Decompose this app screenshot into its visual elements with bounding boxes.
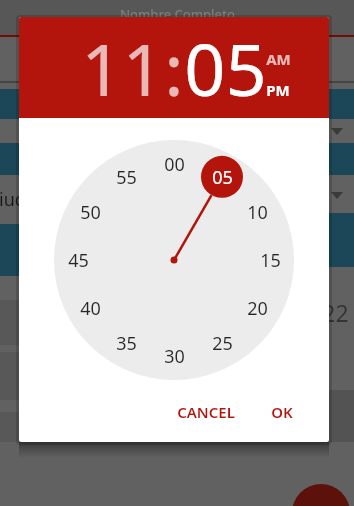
- staticText: Nombre Completo: [120, 5, 235, 23]
- button[interactable]: 00: [154, 152, 194, 176]
- staticText: 15: [260, 248, 281, 272]
- button[interactable]: 15: [250, 248, 290, 272]
- button[interactable]: 11: [81, 19, 164, 117]
- staticText: 05: [212, 165, 233, 189]
- staticText: 40: [80, 296, 101, 320]
- staticText: 20: [247, 296, 268, 320]
- staticText: iud: [0, 187, 26, 212]
- button[interactable]: 05: [202, 165, 242, 189]
- button[interactable]: AM: [266, 49, 291, 69]
- button[interactable]: 55: [106, 165, 146, 189]
- staticText: 22: [322, 297, 349, 328]
- button[interactable]: 30: [154, 344, 194, 368]
- button[interactable]: 45: [58, 248, 98, 272]
- button[interactable]: CANCEL: [159, 398, 253, 426]
- button[interactable]: 35: [106, 331, 146, 355]
- staticText: OK: [271, 402, 293, 422]
- button[interactable]: 40: [70, 296, 110, 320]
- button[interactable]: PM: [266, 80, 290, 100]
- staticText: 45: [68, 248, 89, 272]
- staticText: :: [164, 19, 184, 117]
- button[interactable]: 05: [184, 19, 267, 117]
- staticText: 35: [116, 331, 137, 355]
- button[interactable]: 50: [70, 200, 110, 224]
- button[interactable]: 25: [202, 331, 242, 355]
- staticText: CANCEL: [177, 402, 235, 422]
- button[interactable]: 10: [237, 200, 277, 224]
- button[interactable]: 20: [237, 296, 277, 320]
- button[interactable]: OK: [258, 398, 306, 426]
- staticText: 10: [247, 200, 268, 224]
- staticText: 00: [164, 152, 185, 176]
- staticText: 25: [212, 331, 233, 355]
- staticText: 50: [80, 200, 101, 224]
- staticText: PM: [266, 80, 290, 100]
- staticText: 30: [164, 344, 185, 368]
- staticText: AM: [266, 49, 291, 69]
- staticText: 55: [116, 165, 137, 189]
